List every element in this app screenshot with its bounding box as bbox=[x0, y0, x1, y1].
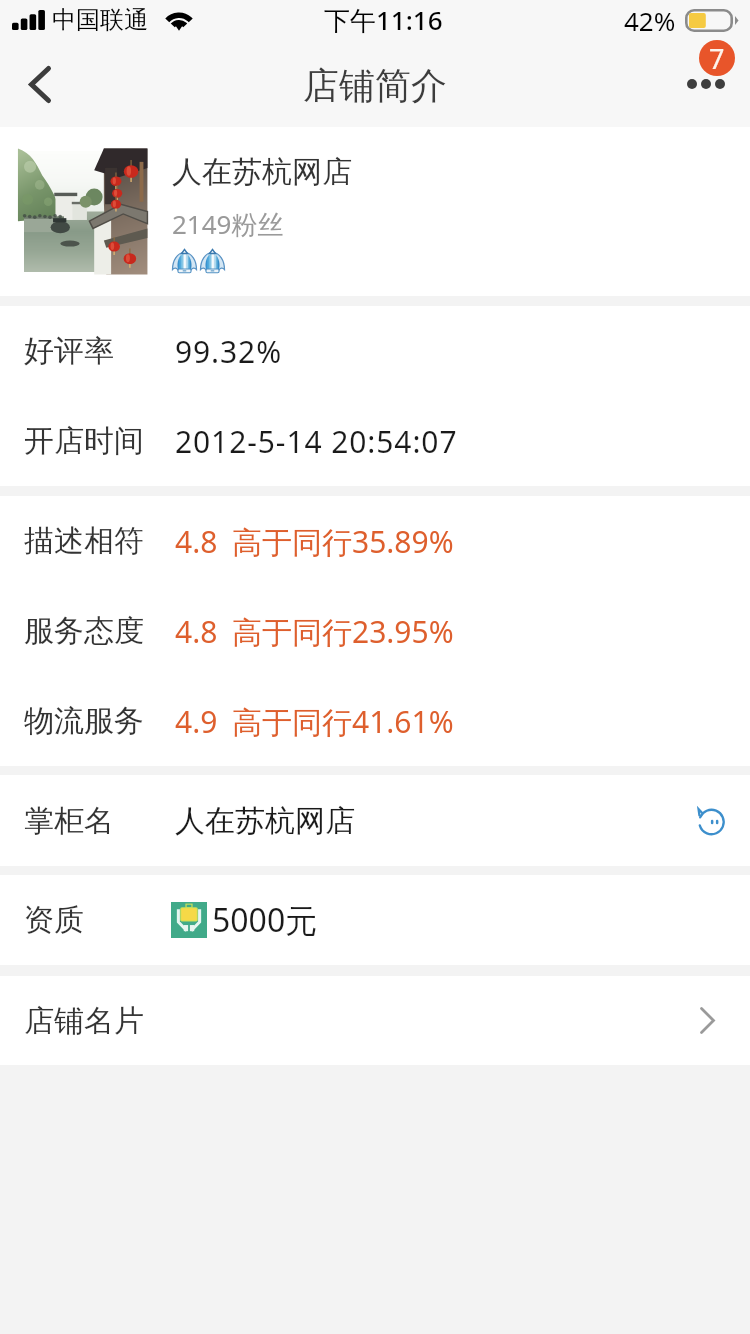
button[interactable]: 资质 bbox=[0, 875, 750, 965]
button[interactable]: More options bbox=[670, 34, 744, 102]
staticText: 描述相符 bbox=[24, 522, 144, 560]
staticText: 掌柜名 bbox=[24, 802, 114, 840]
button[interactable]: 服务态度 bbox=[0, 586, 750, 676]
staticText: 物流服务 bbox=[24, 702, 144, 740]
staticText: 4.9 bbox=[175, 701, 218, 742]
button[interactable]: 物流服务 bbox=[0, 676, 750, 766]
button[interactable]: Back bbox=[4, 42, 76, 126]
button[interactable]: 描述相符 bbox=[0, 496, 750, 586]
button[interactable]: 开店时间 bbox=[0, 396, 750, 486]
button[interactable]: 掌柜名 bbox=[0, 775, 750, 866]
staticText: 高于同行23.95% bbox=[232, 611, 454, 652]
staticText: 2012-5-14 20:54:07 bbox=[175, 421, 458, 462]
staticText: 服务态度 bbox=[24, 612, 144, 650]
button[interactable]: 好评率 bbox=[0, 306, 750, 396]
staticText: 店铺简介 bbox=[303, 63, 447, 108]
staticText: 5000元 bbox=[212, 898, 318, 942]
staticText: 资质 bbox=[24, 901, 84, 939]
staticText: 4.8 bbox=[175, 521, 218, 562]
staticText: 42% bbox=[624, 3, 676, 38]
staticText: 人在苏杭网店 bbox=[175, 802, 355, 840]
staticText: 4.8 bbox=[175, 611, 218, 652]
staticText: 高于同行35.89% bbox=[232, 521, 454, 562]
button[interactable]: 人在苏杭网店 bbox=[0, 127, 750, 296]
staticText: 99.32% bbox=[175, 331, 283, 372]
staticText: 店铺名片 bbox=[24, 1002, 144, 1040]
staticText: 高于同行41.61% bbox=[232, 701, 454, 742]
staticText: 下午11:16 bbox=[324, 2, 443, 38]
staticText: 2149粉丝 bbox=[172, 206, 284, 242]
staticText: 7 bbox=[709, 40, 725, 76]
button[interactable]: 店铺名片 bbox=[0, 976, 750, 1065]
staticText: 开店时间 bbox=[24, 422, 144, 460]
staticText: 好评率 bbox=[24, 332, 114, 370]
staticText: 中国联通 bbox=[52, 5, 148, 35]
staticText: 人在苏杭网店 bbox=[172, 153, 352, 191]
button[interactable]: Chat with seller bbox=[687, 798, 733, 844]
